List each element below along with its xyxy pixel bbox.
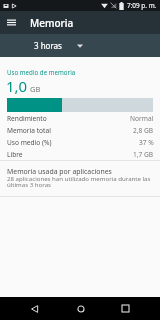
staticText: Uso medio (%) <box>7 138 52 147</box>
button[interactable]: Open navigation drawer <box>0 11 23 34</box>
staticText: 28 aplicaciones han utilizado memoria du… <box>7 174 153 189</box>
staticText: Uso medio de memoria <box>7 68 76 76</box>
staticText: Libre <box>7 150 23 159</box>
button[interactable]: Back <box>23 297 46 320</box>
button[interactable]: Recent apps <box>114 297 137 320</box>
staticText: 1,7 GB <box>133 150 154 159</box>
staticText: Memoria usada por aplicaciones <box>7 167 112 176</box>
staticText: GB <box>30 84 41 94</box>
staticText: Memoria total <box>7 126 51 135</box>
staticText: Memoria <box>30 16 74 30</box>
button[interactable]: Memoria usada por aplicaciones <box>0 161 160 196</box>
button[interactable]: 3 horas <box>28 40 89 51</box>
staticText: Normal <box>130 114 154 123</box>
staticText: 3 horas <box>34 40 62 51</box>
staticText: 2,8 GB <box>133 126 154 135</box>
staticText: 1,0 <box>6 76 28 96</box>
staticText: 7:09 p. m. <box>127 1 157 10</box>
staticText: 37 % <box>139 138 154 147</box>
button[interactable]: Home <box>69 297 92 320</box>
staticText: Rendimiento <box>7 114 47 123</box>
